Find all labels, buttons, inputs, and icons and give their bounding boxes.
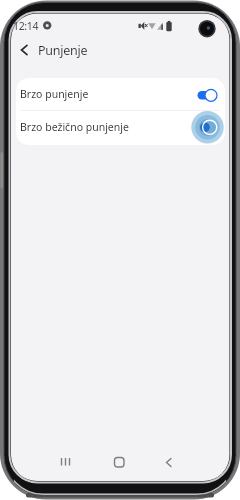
button[interactable] [109, 452, 129, 472]
button[interactable]: Brzo punjenje [16, 78, 225, 110]
staticText: Punjenje [38, 42, 88, 59]
button[interactable] [55, 452, 75, 472]
button[interactable] [158, 452, 178, 472]
button[interactable] [190, 110, 225, 145]
button[interactable] [195, 86, 221, 104]
button[interactable]: Punjenje [14, 39, 134, 61]
staticText: Brzo bežično punjenje [20, 120, 129, 134]
staticText: 12:14 [13, 19, 39, 31]
button[interactable]: Brzo bežično punjenje [16, 111, 225, 145]
staticText: Brzo punjenje [20, 87, 89, 101]
